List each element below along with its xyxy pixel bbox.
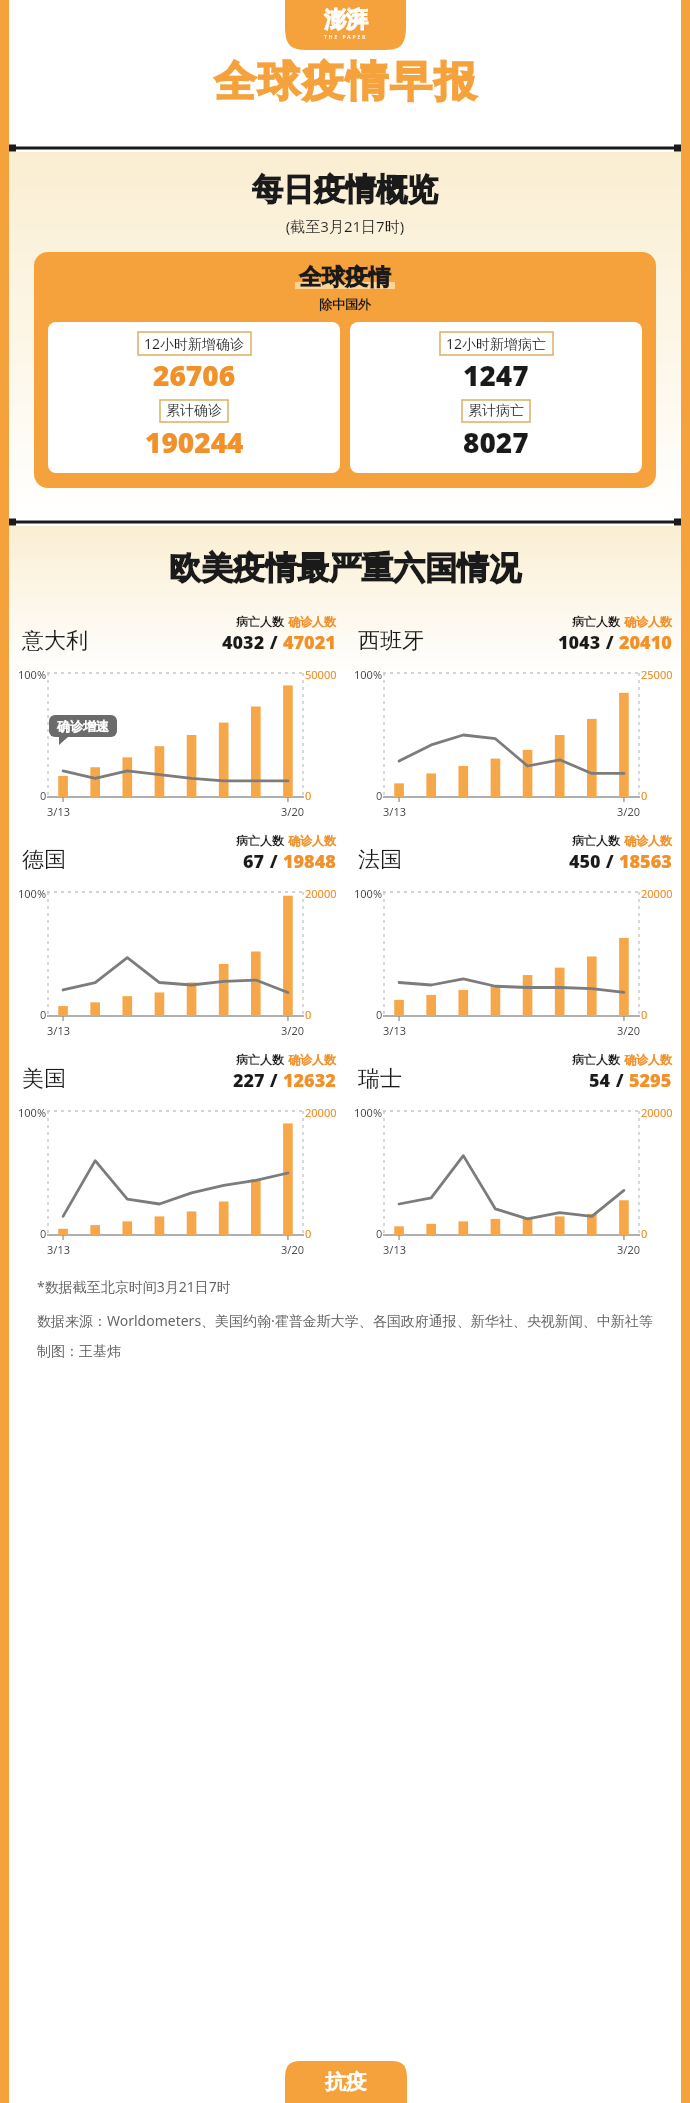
staticText: 3/13 — [383, 804, 406, 819]
staticText: 50000 — [305, 667, 337, 682]
staticText: 病亡人数 — [572, 1052, 620, 1067]
staticText: 3/20 — [281, 804, 304, 819]
staticText: 全球疫情早报 — [213, 56, 477, 109]
button[interactable]: 美国 — [9, 1052, 345, 1257]
staticText: 0 — [376, 1007, 383, 1022]
staticText: 0 — [40, 1226, 47, 1241]
button[interactable]: 抗疫 — [285, 2061, 407, 2103]
staticText: 德国 — [22, 846, 66, 874]
staticText: 确诊人数 — [624, 833, 672, 848]
staticText: 病亡人数 — [572, 614, 620, 629]
staticText: 确诊人数 — [288, 614, 336, 629]
staticText: 100% — [354, 667, 383, 682]
staticText: 欧美疫情最严重六国情况 — [9, 548, 681, 588]
staticText: 意大利 — [22, 627, 88, 655]
staticText: 除中国外 — [48, 296, 642, 312]
staticText: 67 — [243, 849, 265, 874]
staticText: 1043 — [558, 630, 601, 655]
staticText: 3/20 — [281, 1242, 304, 1257]
staticText: 1247 — [463, 356, 529, 394]
staticText: 0 — [376, 788, 383, 803]
staticText: 确诊人数 — [624, 614, 672, 629]
staticText: 20410 — [619, 630, 672, 655]
staticText: 26706 — [153, 356, 236, 394]
staticText: 3/13 — [383, 1023, 406, 1038]
staticText: 12632 — [283, 1068, 336, 1093]
staticText: 法国 — [358, 846, 402, 874]
staticText: 8027 — [463, 423, 529, 461]
staticText: 18563 — [619, 849, 672, 874]
staticText: 美国 — [22, 1065, 66, 1093]
button[interactable]: 西班牙 — [345, 614, 681, 819]
staticText: *数据截至北京时间3月21日7时 — [37, 1277, 231, 1296]
staticText: 0 — [305, 1007, 312, 1022]
staticText: 病亡人数 — [236, 614, 284, 629]
staticText: 5295 — [629, 1068, 672, 1093]
staticText: 190244 — [145, 423, 244, 461]
staticText: 数据来源：Worldometers、美国约翰·霍普金斯大学、各国政府通报、新华社… — [37, 1311, 653, 1330]
staticText: 3/13 — [47, 1023, 70, 1038]
staticText: 450 — [569, 849, 601, 874]
staticText: 每日疫情概览 — [9, 170, 681, 209]
staticText: 确诊人数 — [624, 1052, 672, 1067]
staticText: 100% — [354, 1105, 383, 1120]
staticText: 20000 — [641, 1105, 673, 1120]
staticText: / — [265, 849, 283, 874]
staticText: 20000 — [641, 886, 673, 901]
button[interactable]: 法国 — [345, 833, 681, 1038]
staticText: 20000 — [305, 1105, 337, 1120]
staticText: / — [265, 630, 283, 655]
staticText: 0 — [641, 1226, 648, 1241]
staticText: 54 — [589, 1068, 611, 1093]
staticText: 20000 — [305, 886, 337, 901]
button[interactable]: 12小时新增确诊 — [48, 322, 340, 473]
staticText: 0 — [40, 1007, 47, 1022]
button[interactable]: 全球疫情 — [34, 252, 656, 488]
staticText: 0 — [305, 788, 312, 803]
button[interactable]: 德国 — [9, 833, 345, 1038]
button[interactable]: 意大利 — [9, 614, 345, 819]
staticText: 19848 — [283, 849, 336, 874]
staticText: / — [611, 1068, 629, 1093]
staticText: 100% — [18, 886, 47, 901]
staticText: 4032 — [222, 630, 265, 655]
staticText: 3/20 — [617, 1242, 640, 1257]
staticText: 0 — [376, 1226, 383, 1241]
staticText: 累计病亡 — [468, 402, 524, 420]
staticText: 累计确诊 — [166, 402, 222, 420]
staticText: 确诊增速 — [57, 718, 109, 734]
staticText: / — [601, 849, 619, 874]
button[interactable]: 瑞士 — [345, 1052, 681, 1257]
staticText: 3/13 — [383, 1242, 406, 1257]
staticText: 25000 — [641, 667, 673, 682]
staticText: 病亡人数 — [572, 833, 620, 848]
staticText: 227 — [233, 1068, 265, 1093]
staticText: 3/20 — [617, 804, 640, 819]
staticText: / — [601, 630, 619, 655]
staticText: 瑞士 — [358, 1065, 402, 1093]
staticText: 确诊人数 — [288, 1052, 336, 1067]
staticText: 47021 — [283, 630, 336, 655]
staticText: 12小时新增确诊 — [144, 334, 245, 353]
staticText: 3/13 — [47, 1242, 70, 1257]
staticText: 西班牙 — [358, 627, 424, 655]
staticText: 抗疫 — [325, 2069, 367, 2095]
staticText: / — [265, 1068, 283, 1093]
staticText: 0 — [641, 1007, 648, 1022]
staticText: 0 — [305, 1226, 312, 1241]
staticText: (截至3月21日7时) — [9, 216, 681, 236]
staticText: 3/13 — [47, 804, 70, 819]
staticText: 澎湃 — [324, 6, 368, 34]
staticText: 100% — [354, 886, 383, 901]
staticText: 全球疫情 — [299, 263, 391, 292]
staticText: 3/20 — [617, 1023, 640, 1038]
staticText: 0 — [40, 788, 47, 803]
staticText: 12小时新增病亡 — [446, 334, 547, 353]
staticText: 3/20 — [281, 1023, 304, 1038]
staticText: 确诊人数 — [288, 833, 336, 848]
staticText: 100% — [18, 1105, 47, 1120]
staticText: 病亡人数 — [236, 1052, 284, 1067]
staticText: 0 — [641, 788, 648, 803]
staticText: THE PAPER — [324, 34, 368, 41]
button[interactable]: 12小时新增病亡 — [350, 322, 642, 473]
